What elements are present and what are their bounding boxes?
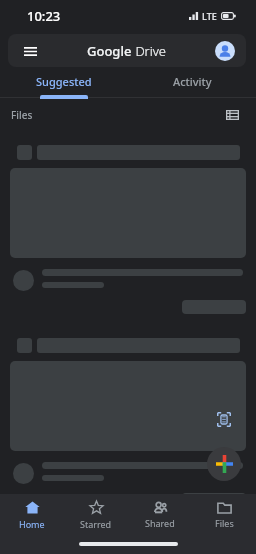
button[interactable]: Home — [0, 494, 64, 536]
staticText: Shared — [145, 517, 175, 529]
staticText: Google — [87, 42, 132, 60]
button[interactable]: Scan document — [210, 405, 238, 433]
button[interactable]: Change list layout — [222, 107, 242, 123]
staticText: Home — [19, 518, 45, 530]
button[interactable]: Suggested — [0, 72, 128, 99]
button[interactable]: Open navigation menu — [16, 37, 44, 65]
staticText: 10:23 — [27, 7, 61, 25]
button[interactable]: Shared — [128, 494, 192, 536]
staticText: Drive — [132, 42, 167, 60]
button[interactable]: Starred — [64, 494, 128, 536]
staticText: Starred — [80, 518, 112, 530]
staticText: Suggested — [36, 74, 92, 89]
button[interactable]: Files — [192, 494, 256, 536]
staticText: LTE — [202, 10, 217, 22]
staticText: Files — [11, 108, 33, 122]
button[interactable]: Account — [215, 41, 235, 61]
button[interactable]: Activity — [128, 72, 256, 99]
staticText: Files — [215, 517, 234, 529]
button[interactable]: Create new — [207, 447, 241, 481]
staticText: Activity — [173, 74, 212, 89]
